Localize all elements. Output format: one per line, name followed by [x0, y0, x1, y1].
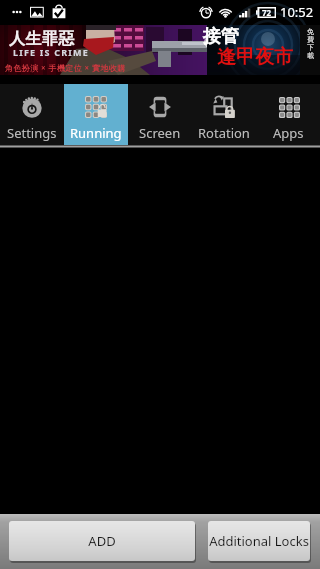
staticText: Apps [273, 124, 304, 142]
staticText: Running [70, 124, 122, 142]
staticText: 角色扮演 × 手機定位 × 實地收購 [5, 62, 126, 73]
staticText: 人生罪惡 [9, 29, 75, 49]
staticText: ADD [88, 532, 116, 550]
staticText: Screen [139, 124, 181, 142]
button[interactable]: Advertisement [0, 25, 320, 75]
staticText: Additional Locks [209, 532, 309, 550]
button[interactable]: Screen [128, 84, 192, 145]
staticText: 接管 [203, 25, 239, 48]
staticText: 免 費 下 載 [307, 27, 314, 60]
button[interactable]: Rotation [192, 84, 256, 145]
button[interactable]: Settings [0, 84, 64, 145]
staticText: 10:52 [280, 3, 314, 21]
staticText: 72 [262, 7, 272, 18]
staticText: Settings [7, 124, 57, 142]
staticText: LIFE IS CRIME [13, 46, 89, 58]
button[interactable]: ADD [9, 521, 195, 561]
button[interactable]: Apps [256, 84, 320, 145]
button[interactable]: Running [64, 84, 128, 145]
button[interactable]: Additional Locks [208, 521, 310, 561]
staticText: 逢甲夜市 [217, 45, 293, 69]
staticText: Rotation [198, 124, 250, 142]
